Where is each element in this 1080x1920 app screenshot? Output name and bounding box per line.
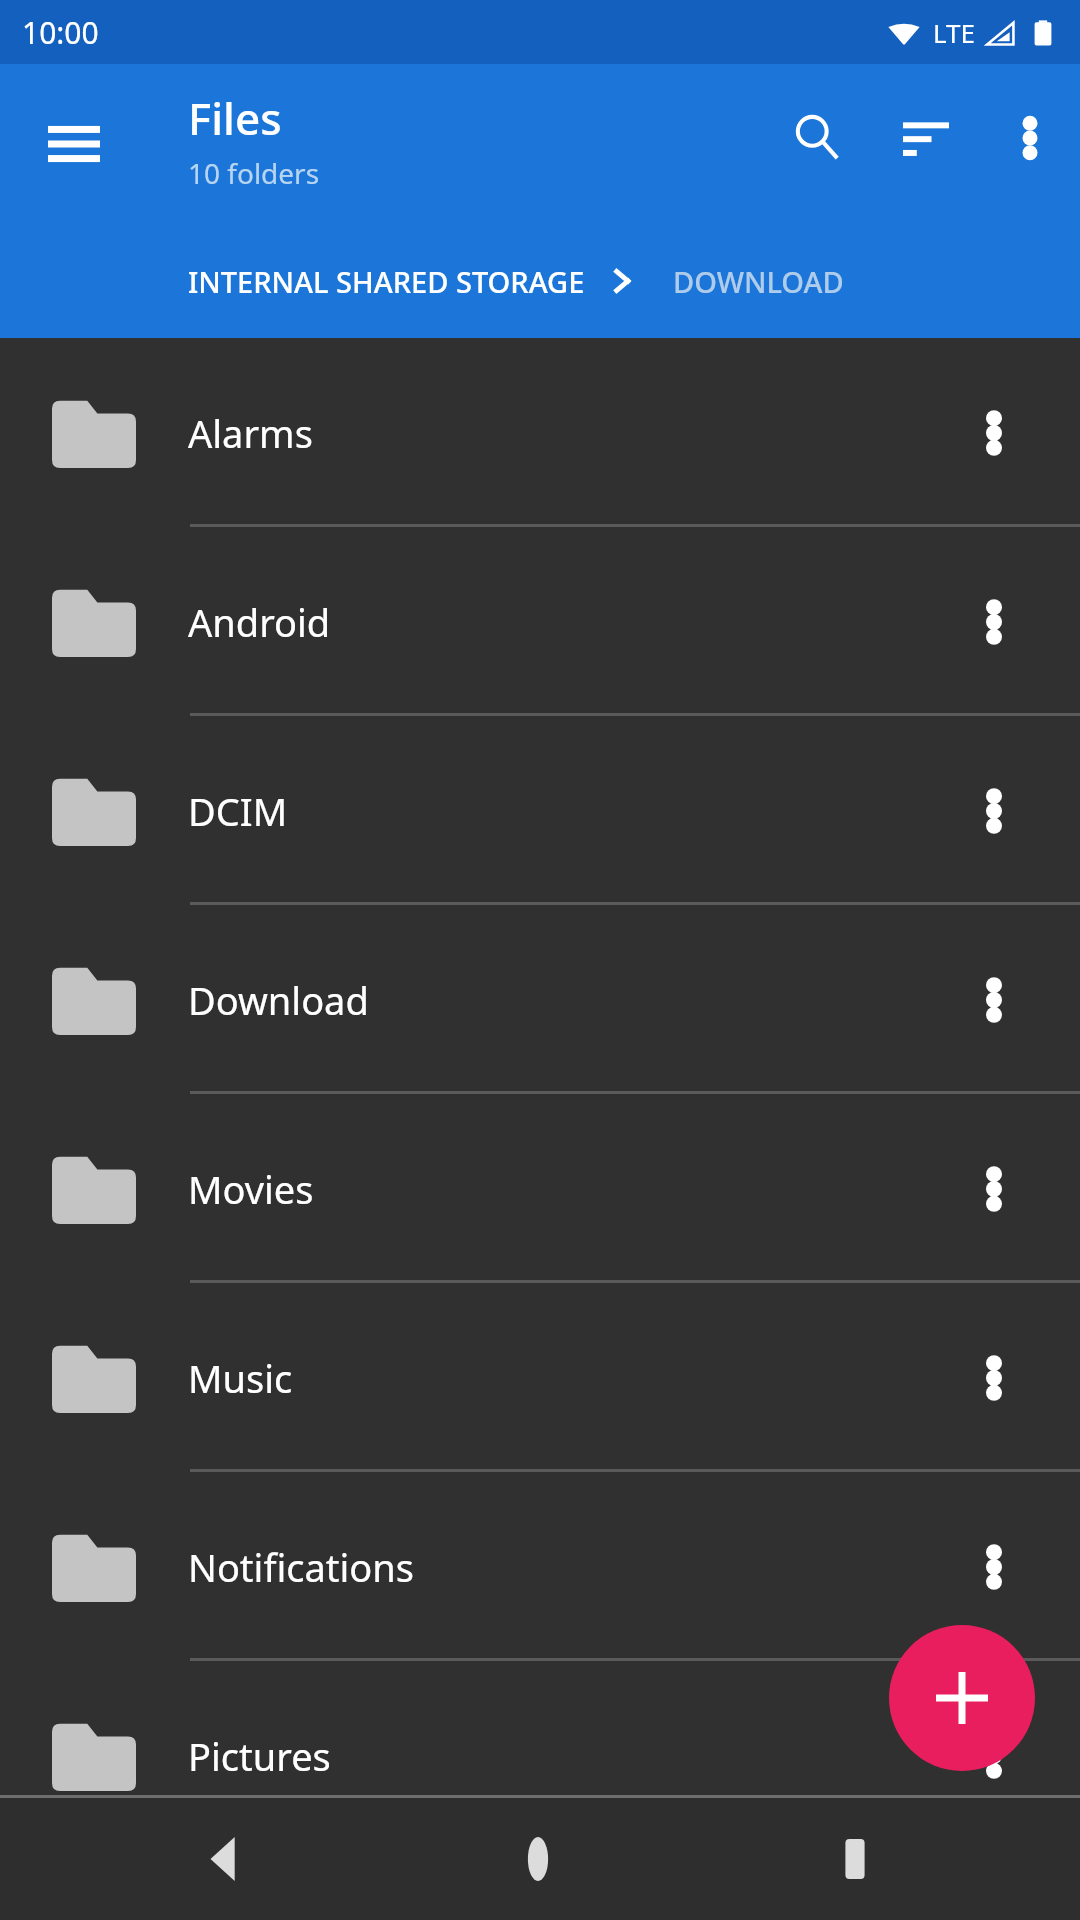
staticText: DOWNLOAD <box>673 262 844 301</box>
staticText: Android <box>188 596 331 648</box>
button[interactable]: More options for Music <box>946 1330 1042 1426</box>
staticText: 10 folders <box>188 154 320 192</box>
button[interactable]: Create new <box>889 1625 1035 1771</box>
button[interactable]: INTERNAL SHARED STORAGE <box>188 248 585 315</box>
button[interactable]: More options for DCIM <box>946 763 1042 859</box>
button[interactable]: More options for Alarms <box>946 385 1042 481</box>
button[interactable]: More options for Android <box>946 574 1042 670</box>
staticText: DCIM <box>188 785 288 837</box>
button[interactable]: Search <box>764 84 872 192</box>
button[interactable]: More options for Movies <box>946 1141 1042 1237</box>
staticText: LTE <box>933 15 976 50</box>
staticText: Files <box>188 88 282 148</box>
staticText: Movies <box>188 1163 314 1215</box>
staticText: Notifications <box>188 1541 415 1593</box>
button[interactable]: More options <box>980 88 1080 188</box>
staticText: Music <box>188 1352 293 1404</box>
button[interactable]: Alarms <box>0 338 1080 527</box>
button[interactable]: More options for Download <box>946 952 1042 1048</box>
staticText: Alarms <box>188 407 313 459</box>
button[interactable]: Download <box>0 905 1080 1094</box>
button[interactable]: Android <box>0 527 1080 716</box>
button[interactable]: DCIM <box>0 716 1080 905</box>
button[interactable]: Home <box>483 1804 593 1914</box>
button[interactable]: More options for Pictures <box>946 1708 1042 1804</box>
button[interactable]: Movies <box>0 1094 1080 1283</box>
button[interactable]: Back <box>170 1804 280 1914</box>
button[interactable]: More options for Notifications <box>946 1519 1042 1615</box>
button[interactable]: Music <box>0 1283 1080 1472</box>
staticText: Download <box>188 974 369 1026</box>
button[interactable]: DOWNLOAD <box>673 248 844 315</box>
staticText: INTERNAL SHARED STORAGE <box>188 262 585 301</box>
button[interactable]: Notifications <box>0 1472 1080 1661</box>
button[interactable]: Recent apps <box>800 1804 910 1914</box>
button[interactable]: Pictures <box>0 1661 1080 1850</box>
staticText: Pictures <box>188 1730 331 1782</box>
button[interactable]: Open navigation drawer <box>20 90 128 198</box>
button[interactable]: Sort <box>872 84 980 192</box>
staticText: 10:00 <box>22 12 99 53</box>
